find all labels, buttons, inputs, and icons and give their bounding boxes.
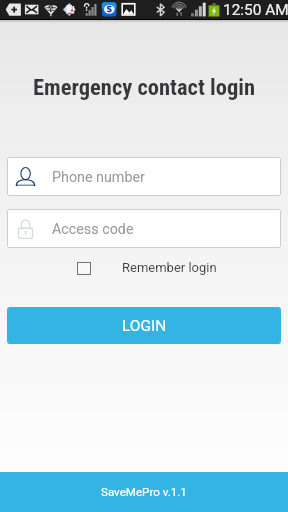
button[interactable]: LOGIN — [7, 307, 281, 344]
staticText: Phone number — [52, 169, 145, 186]
staticText: 12:50 AM — [223, 1, 288, 19]
button[interactable]: SaveMePro v.1.1 — [0, 472, 288, 512]
staticText: Emergency contact login — [0, 74, 288, 100]
staticText: Access code — [52, 221, 134, 238]
button[interactable]: Phone number — [7, 157, 281, 196]
staticText: Remember login — [122, 260, 217, 275]
staticText: LOGIN — [122, 317, 167, 335]
button[interactable]: Access code — [7, 209, 281, 248]
button[interactable]: Remember login — [73, 260, 217, 275]
staticText: SaveMePro v.1.1 — [101, 485, 187, 499]
